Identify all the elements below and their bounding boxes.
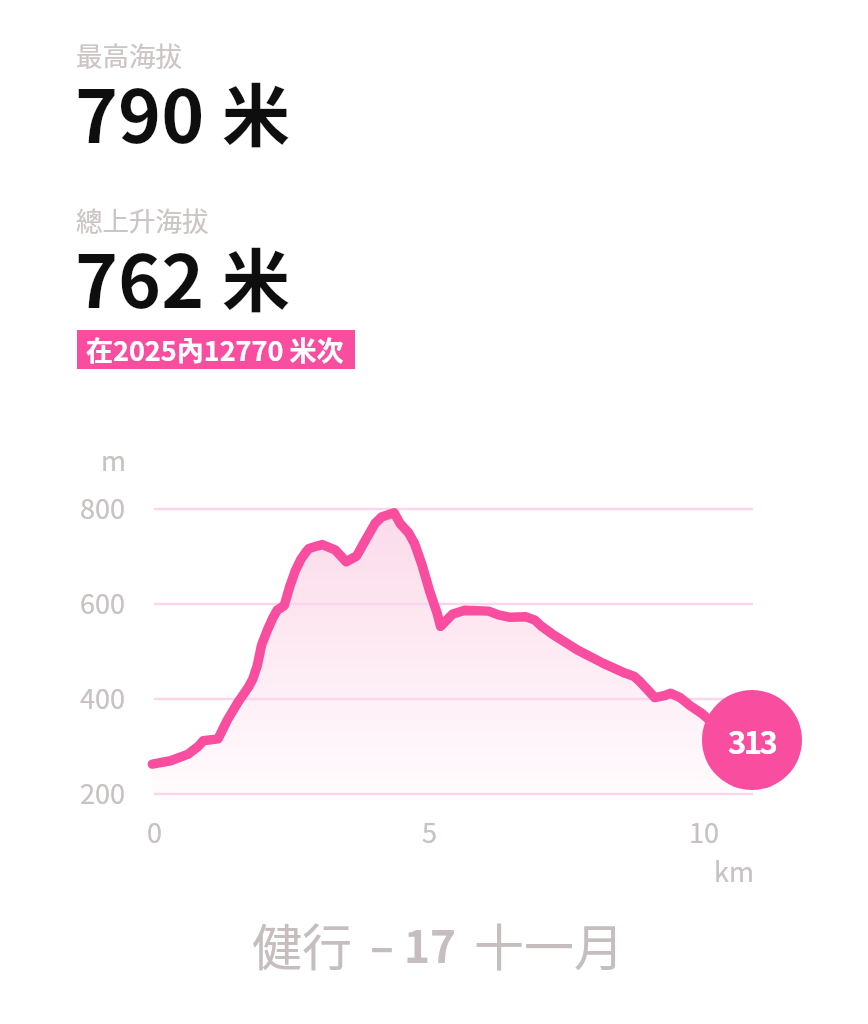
staticText: 最高海拔 — [76, 35, 182, 73]
staticText: 313 — [728, 718, 776, 763]
staticText: 總上升海拔 — [76, 200, 209, 238]
staticText: 5 — [422, 812, 437, 851]
staticText: 600 — [80, 583, 125, 622]
staticText: 10 — [689, 812, 719, 851]
staticText: 健行 — [252, 908, 352, 980]
staticText: 400 — [80, 678, 125, 717]
staticText: 米 — [222, 227, 291, 325]
staticText: 800 — [80, 488, 125, 527]
button[interactable]: End elevation 313 metres — [702, 690, 802, 790]
staticText: 米 — [222, 62, 291, 160]
staticText: km — [714, 851, 754, 890]
staticText: 762 — [75, 223, 205, 329]
staticText: 0 — [147, 812, 162, 851]
staticText: m — [101, 440, 127, 479]
staticText: 790 — [75, 58, 205, 164]
staticText: – 17 — [370, 912, 456, 976]
staticText: 200 — [80, 773, 125, 812]
button[interactable]: 在2025內12770 米次 — [77, 330, 355, 369]
staticText: 在2025內12770 米次 — [86, 330, 344, 369]
staticText: 十一月 — [474, 908, 624, 980]
